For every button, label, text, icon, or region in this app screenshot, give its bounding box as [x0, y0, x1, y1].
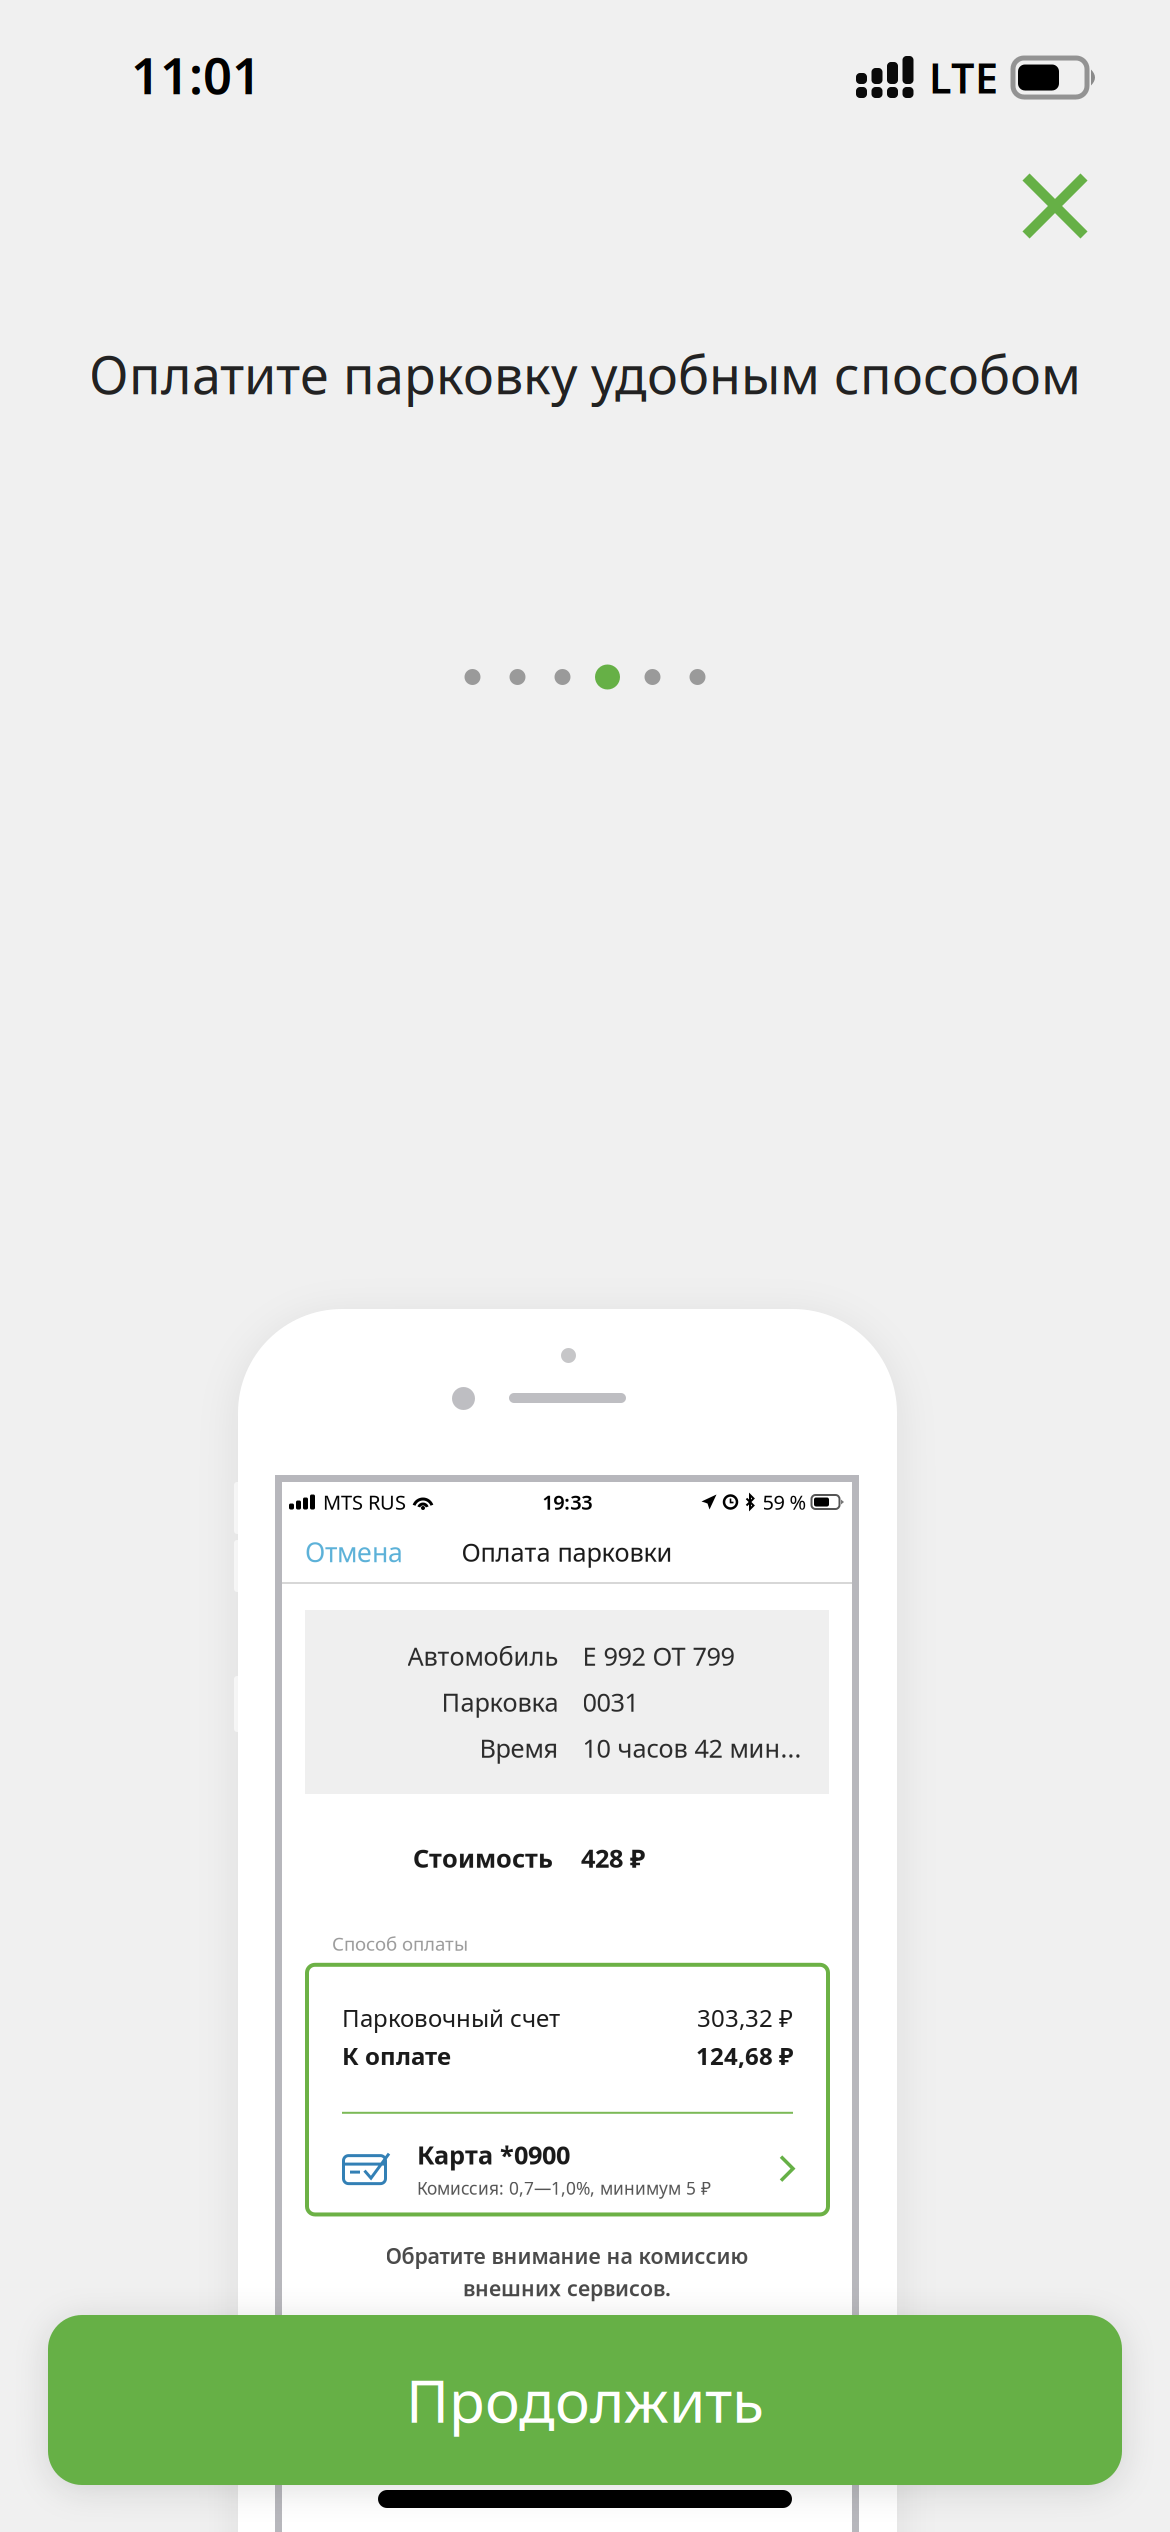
staticText: 303,32 ₽ — [697, 2002, 793, 2034]
staticText: внешних сервисов. — [463, 2274, 671, 2302]
staticText: Комиссия: 0,7—1,0%, минимум 5 ₽ — [417, 2176, 711, 2199]
button[interactable]: Карта *0900 — [342, 2114, 793, 2199]
button[interactable]: Продолжить — [48, 2315, 1122, 2485]
staticText: 124,68 ₽ — [696, 2040, 793, 2072]
staticText: Оплатите парковку удобным способом — [89, 339, 1081, 409]
staticText: Автомобиль — [407, 1639, 558, 1673]
staticText: Продолжить — [406, 2361, 764, 2439]
staticText: MTS RUS — [323, 1489, 406, 1515]
staticText: Парковка — [441, 1685, 558, 1719]
staticText: Стоимость — [413, 1841, 553, 1875]
staticText: Парковочный счет — [342, 2002, 560, 2034]
staticText: Способ оплаты — [332, 1931, 468, 1956]
staticText: LTE — [929, 50, 998, 105]
staticText: Обратите внимание на комиссию — [385, 2241, 748, 2270]
staticText: 11:01 — [131, 41, 261, 108]
staticText: Время — [479, 1731, 558, 1765]
staticText: 428 ₽ — [581, 1841, 645, 1875]
staticText: Оплата парковки — [461, 1535, 672, 1569]
staticText: 59 % — [762, 1489, 806, 1515]
staticText: 0031 — [582, 1685, 638, 1719]
staticText: Карта *0900 — [417, 2138, 570, 2171]
button[interactable]: Close — [1000, 151, 1110, 261]
staticText: 19:33 — [542, 1489, 592, 1515]
staticText: 10 часов 42 мин... — [582, 1731, 801, 1765]
staticText: E 992 OT 799 — [582, 1639, 734, 1673]
staticText: Отмена — [305, 1534, 403, 1570]
staticText: К оплате — [342, 2040, 451, 2072]
button[interactable]: Отмена — [305, 1528, 403, 1576]
